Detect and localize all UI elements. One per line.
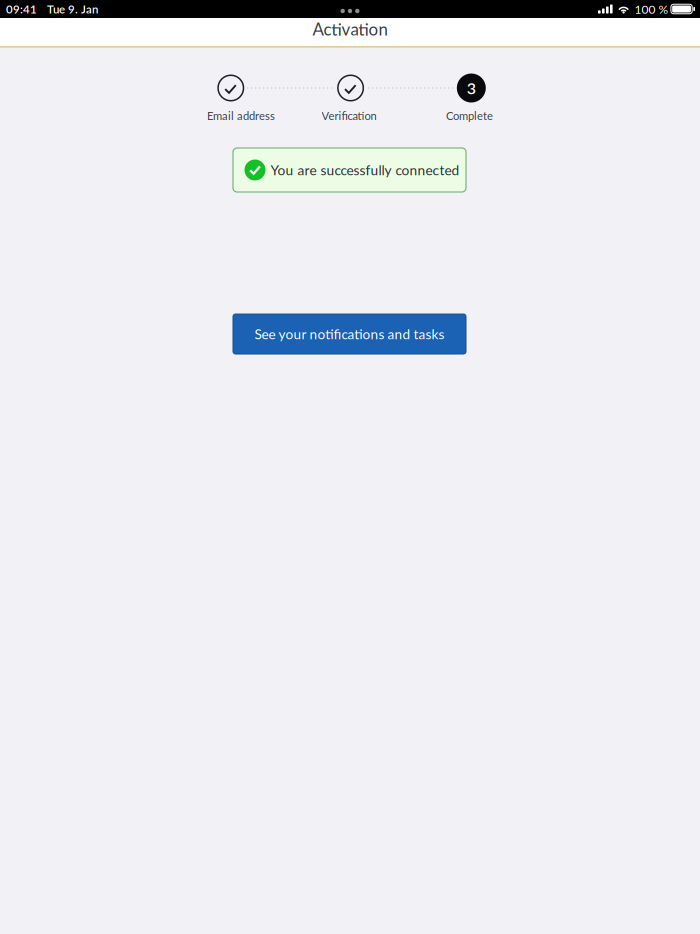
staticText: 100 %: [634, 2, 668, 16]
staticText: 09:41: [6, 2, 37, 16]
staticText: Email address: [207, 109, 275, 122]
staticText: Activation: [312, 19, 387, 39]
staticText: 3: [467, 78, 476, 98]
staticText: See your notifications and tasks: [254, 326, 444, 342]
button[interactable]: See your notifications and tasks: [233, 314, 466, 354]
staticText: Complete: [446, 109, 493, 122]
staticText: You are successfully connected: [270, 162, 459, 178]
staticText: Verification: [321, 109, 376, 122]
staticText: Tue 9. Jan: [47, 2, 98, 16]
